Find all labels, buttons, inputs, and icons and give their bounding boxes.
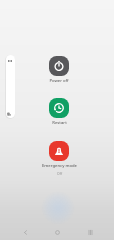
staticText: Emergency mode	[42, 163, 77, 169]
staticText: Restart	[52, 120, 67, 126]
button[interactable]: Home	[49, 224, 65, 240]
button[interactable]: Edge panel	[6, 55, 15, 118]
button[interactable]	[49, 98, 69, 118]
staticText: Off	[57, 171, 62, 176]
button[interactable]	[49, 141, 69, 161]
button[interactable]	[49, 56, 69, 76]
button[interactable]: Recent apps	[82, 224, 98, 240]
staticText: Power off	[49, 78, 69, 84]
button[interactable]: Back	[17, 224, 33, 240]
